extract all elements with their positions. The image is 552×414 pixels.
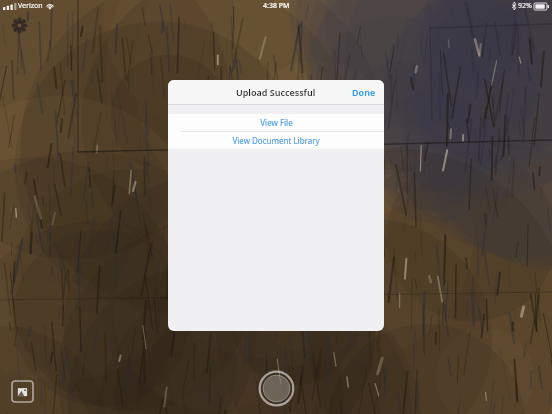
staticText: Done — [352, 86, 376, 98]
staticText: View File — [260, 117, 293, 128]
button[interactable]: View File — [168, 114, 384, 131]
staticText: Verizon — [18, 1, 43, 11]
button[interactable]: Done — [344, 80, 384, 104]
button[interactable]: Settings — [9, 15, 29, 35]
button[interactable]: Take photo — [259, 371, 294, 406]
button[interactable]: Open gallery — [12, 381, 33, 402]
staticText: 92% — [518, 1, 532, 11]
staticText: View Document Library — [232, 135, 320, 146]
staticText: 4:38 PM — [263, 1, 290, 11]
staticText: Upload Successful — [236, 86, 316, 98]
button[interactable]: View Document Library — [168, 132, 384, 149]
